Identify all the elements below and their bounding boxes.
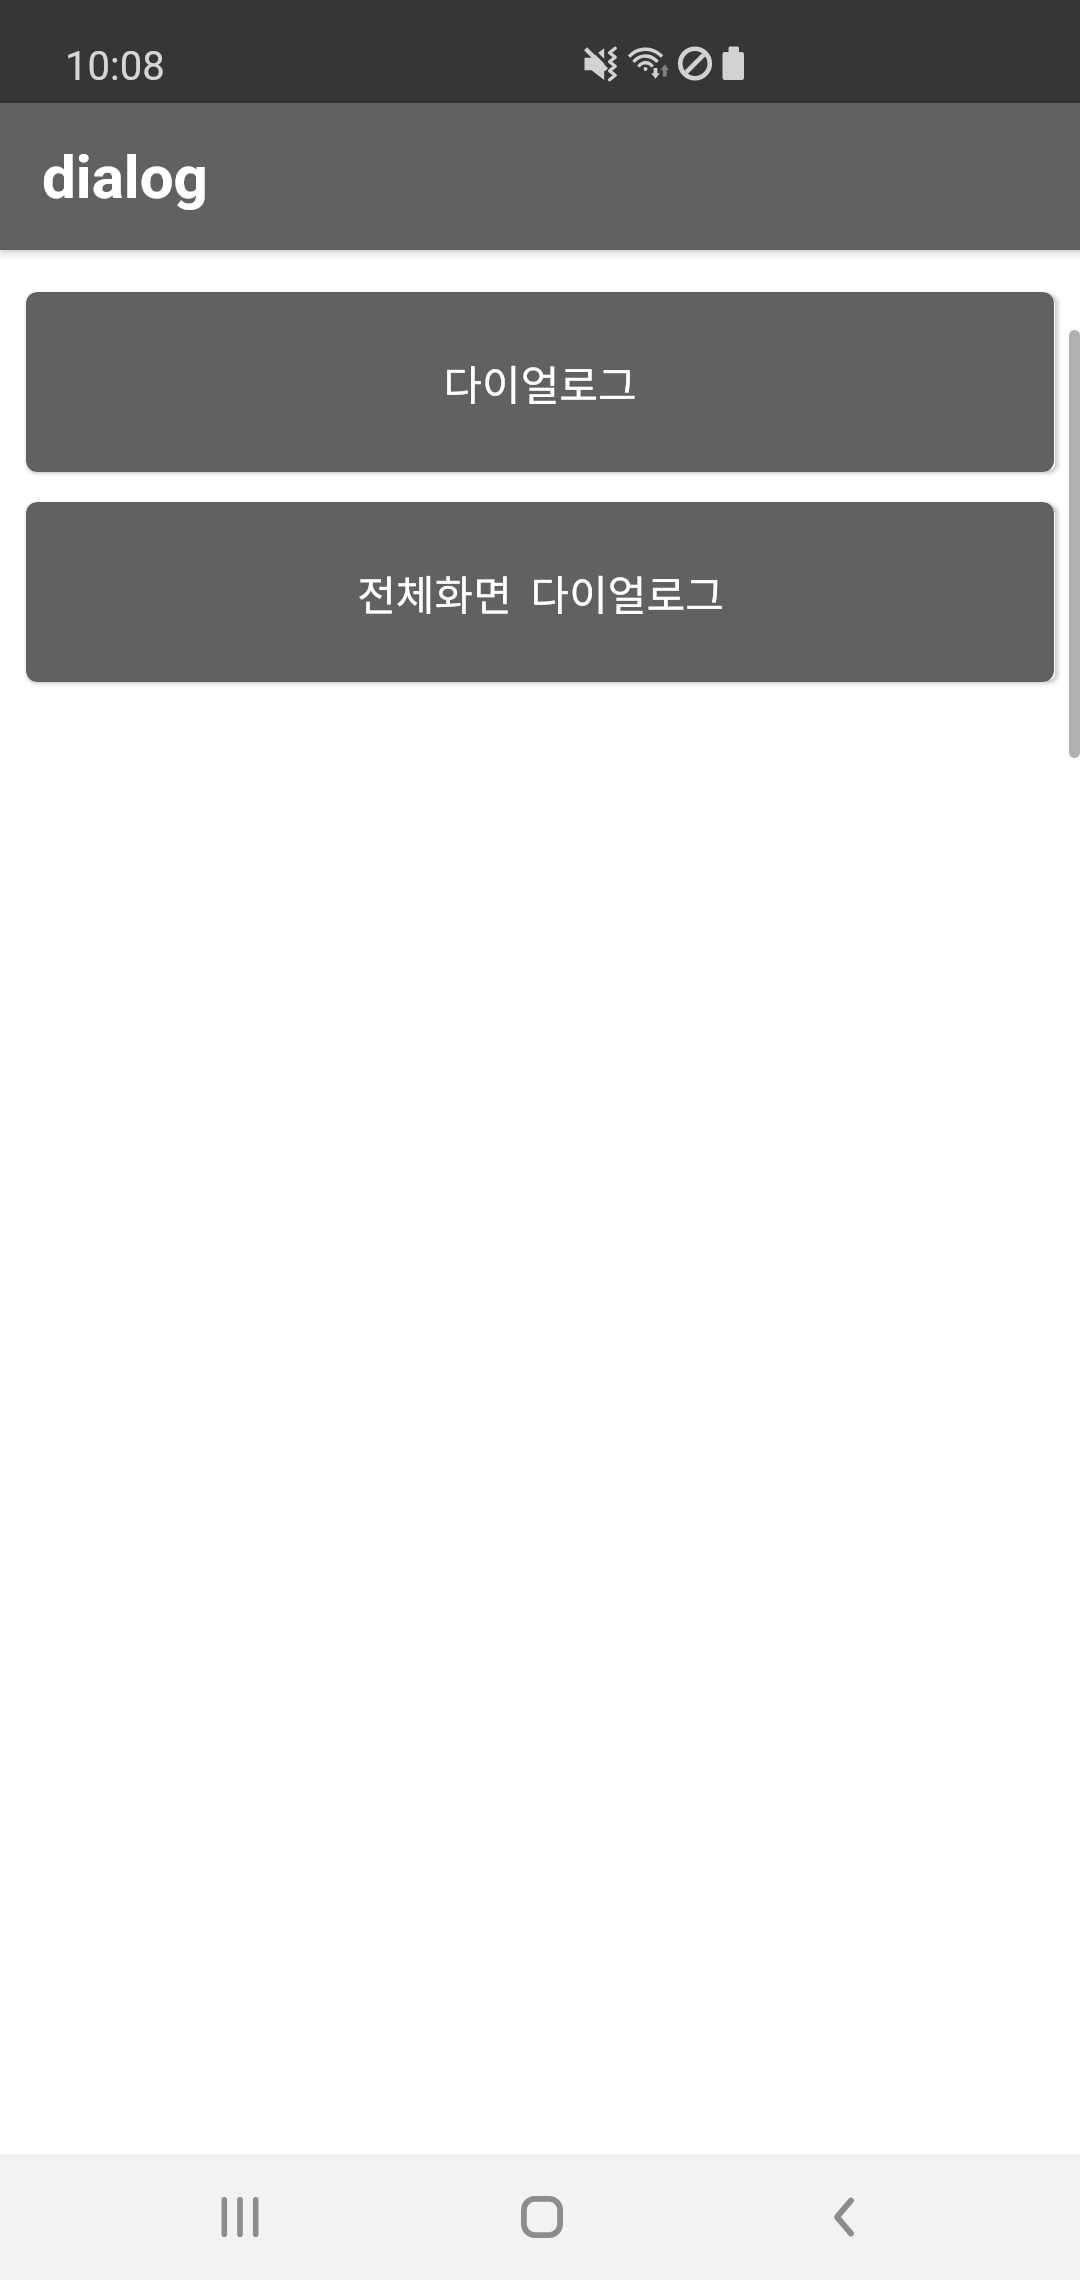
staticText: 10:08 <box>65 43 165 90</box>
staticText: dialog <box>42 142 208 212</box>
button[interactable]: Home <box>462 2154 622 2280</box>
button[interactable]: 전체화면 다이얼로그 <box>26 502 1054 682</box>
staticText: 다이얼로그 <box>443 352 637 413</box>
button[interactable]: 다이얼로그 <box>26 292 1054 472</box>
button[interactable]: Back <box>764 2154 924 2280</box>
button[interactable]: Recent apps <box>160 2154 320 2280</box>
staticText: 전체화면 다이얼로그 <box>357 562 724 623</box>
